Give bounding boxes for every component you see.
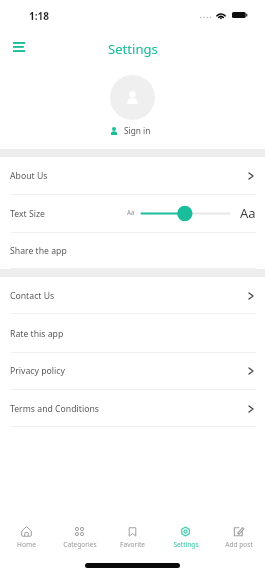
staticText: Categories (63, 540, 97, 549)
staticText: Rate this app (10, 328, 64, 340)
staticText: Favorite (120, 540, 145, 549)
staticText: Privacy policy (10, 365, 65, 377)
staticText: Add post (225, 540, 253, 549)
staticText: Terms and Conditions (10, 403, 99, 415)
button[interactable]: Categories (53, 524, 106, 551)
button[interactable]: Text size slider (140, 205, 230, 222)
button[interactable]: Menu (9, 38, 29, 58)
button[interactable]: Share the app (0, 233, 265, 269)
staticText: About Us (10, 170, 48, 182)
button[interactable]: Settings (159, 524, 212, 551)
staticText: Settings (108, 40, 158, 58)
button[interactable]: Sign in (106, 123, 155, 138)
button[interactable]: Rate this app (0, 315, 265, 353)
staticText: Home (17, 540, 36, 549)
staticText: 1:18 (29, 9, 49, 23)
button[interactable]: Terms and Conditions (0, 390, 265, 427)
staticText: Sign in (124, 125, 151, 136)
staticText: Aa (240, 204, 256, 222)
staticText: Share the app (10, 245, 67, 257)
button[interactable]: Contact Us (0, 277, 265, 314)
button[interactable]: Privacy policy (0, 352, 265, 390)
button[interactable]: Favorite (106, 524, 159, 551)
staticText: Settings (173, 540, 199, 549)
staticText: Aa (127, 208, 135, 216)
button[interactable]: Add post (212, 524, 265, 551)
staticText: Contact Us (10, 290, 55, 302)
button[interactable]: About Us (0, 157, 265, 195)
staticText: Text Size (10, 208, 45, 220)
button[interactable]: Home (0, 524, 53, 551)
